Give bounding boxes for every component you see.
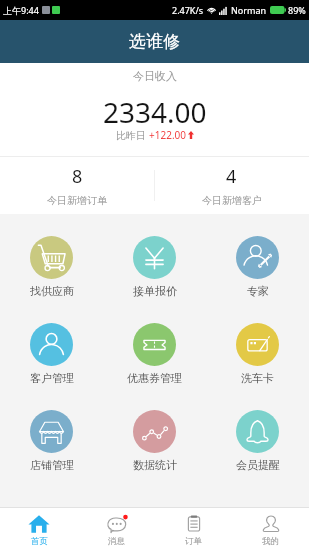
button[interactable]: 专家 [206,236,309,298]
staticText: 4 [226,164,237,189]
staticText: 今日收入 [133,69,177,83]
staticText: 今日新增客户 [202,194,262,207]
staticText: 订单 [185,536,202,547]
staticText: 89% [288,4,306,16]
button[interactable]: 优惠券管理 [103,323,206,385]
staticText: 首页 [31,536,48,547]
staticText: 会员提醒 [236,458,280,472]
staticText: 比昨日 [116,128,149,142]
button[interactable]: 店铺管理 [0,410,103,472]
staticText: +122.00 [149,128,186,142]
button[interactable]: 洗车卡 [206,323,309,385]
button[interactable]: Profile [232,508,309,550]
staticText: 客户管理 [30,371,74,385]
staticText: 我的 [262,536,279,547]
button[interactable]: 找供应商 [0,236,103,298]
button[interactable]: Home [0,508,78,550]
button[interactable]: 8 [0,157,154,214]
staticText: 2.47K/s [172,4,204,16]
staticText: 专家 [247,284,269,298]
staticText: 2334.00 [103,93,207,127]
button[interactable]: Orders [155,508,232,550]
staticText: 选谁修 [129,31,180,52]
staticText: 消息 [108,536,125,547]
button[interactable]: Messages [78,508,155,550]
button[interactable]: 客户管理 [0,323,103,385]
button[interactable]: 4 [154,157,309,214]
button[interactable]: 会员提醒 [206,410,309,472]
staticText: 优惠券管理 [127,371,182,385]
staticText: 数据统计 [133,458,177,472]
staticText: Norman [231,4,267,16]
staticText: 接单报价 [133,284,177,298]
staticText: 洗车卡 [241,371,274,385]
staticText: 上午9:44 [3,4,39,16]
staticText: 8 [72,164,83,189]
button[interactable]: 接单报价 [103,236,206,298]
staticText: 店铺管理 [30,458,74,472]
button[interactable]: 数据统计 [103,410,206,472]
staticText: 找供应商 [30,284,74,298]
staticText: 今日新增订单 [47,194,107,207]
